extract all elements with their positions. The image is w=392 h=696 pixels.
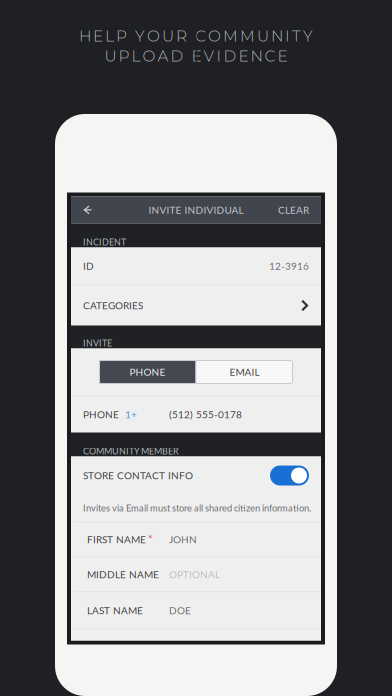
staticText: INCIDENT — [83, 237, 126, 247]
staticText: H E L P Y O U R C O M M U N I T Y — [79, 27, 313, 45]
staticText: 1+ — [125, 408, 137, 420]
button[interactable]: Back — [71, 196, 105, 223]
staticText: JOHN — [169, 533, 197, 545]
button[interactable]: CATEGORIES — [71, 285, 321, 325]
staticText: MIDDLE NAME — [87, 568, 159, 580]
button[interactable]: PHONE — [99, 360, 195, 383]
staticText: 12-3916 — [269, 260, 309, 272]
button[interactable]: Store contact info — [270, 465, 309, 485]
staticText: PHONE — [129, 366, 165, 378]
staticText: INVITE — [83, 338, 112, 348]
button[interactable]: EMAIL — [196, 360, 292, 383]
button[interactable]: CLEAR — [278, 196, 321, 223]
staticText: * — [148, 533, 153, 546]
staticText: STORE CONTACT INFO — [83, 469, 193, 481]
staticText: CATEGORIES — [83, 299, 143, 311]
staticText: ID — [83, 260, 94, 272]
staticText: OPTIONAL — [169, 568, 220, 580]
staticText: U P L O A D E V I D E N C E — [104, 47, 287, 65]
staticText: EMAIL — [229, 366, 259, 378]
staticText: PHONE — [83, 408, 119, 420]
staticText: CLEAR — [278, 204, 309, 216]
staticText: DOE — [169, 604, 191, 616]
staticText: (512) 555-0178 — [169, 408, 242, 420]
staticText: LAST NAME — [87, 604, 143, 616]
staticText: COMMUNITY MEMBER — [83, 446, 179, 456]
staticText: FIRST NAME — [87, 533, 146, 545]
staticText: Invites via Email must store all shared … — [83, 502, 311, 514]
staticText: INVITE INDIVIDUAL — [148, 204, 243, 216]
